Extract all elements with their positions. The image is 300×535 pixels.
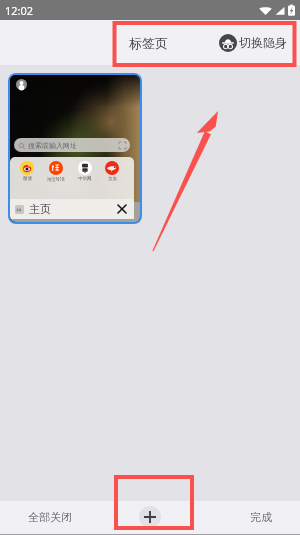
button[interactable]: 京东 <box>105 161 119 182</box>
button[interactable]: 搜索或输入网址 <box>10 75 140 222</box>
button[interactable]: New tab <box>139 506 161 528</box>
staticText: 全部关闭 <box>28 510 72 524</box>
staticText: 切换隐身 <box>239 35 287 50</box>
button[interactable]: 切换隐身 <box>169 20 295 65</box>
button[interactable]: Close tab <box>113 200 131 218</box>
staticText: 搜索或输入网址 <box>28 141 77 150</box>
staticText: 标签页 <box>129 35 168 51</box>
button[interactable]: 全部关闭 <box>0 501 100 533</box>
staticText: 微博 <box>23 176 32 182</box>
button[interactable]: 微博 <box>20 161 34 182</box>
button[interactable]: 淘宝N18 <box>47 161 65 182</box>
staticText: 主页 <box>29 202 51 216</box>
button[interactable]: 中华网 <box>78 161 92 182</box>
staticText: 12:02 <box>5 3 34 18</box>
staticText: 完成 <box>250 510 272 524</box>
button[interactable]: 搜索或输入网址 <box>14 138 130 152</box>
button[interactable]: 完成 <box>200 501 300 533</box>
staticText: 京东 <box>108 176 117 182</box>
staticText: 淘宝N18 <box>47 176 65 182</box>
staticText: 中华网 <box>78 176 92 182</box>
